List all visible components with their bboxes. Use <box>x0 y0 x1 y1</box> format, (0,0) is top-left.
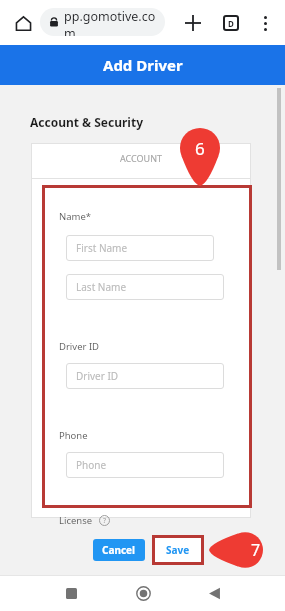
staticText: ACCOUNT <box>120 152 163 164</box>
staticText: pp.gomotive.com <box>64 8 165 36</box>
button[interactable]: Recent apps <box>58 580 84 606</box>
staticText: ? <box>103 516 107 526</box>
button[interactable]: Cancel <box>93 539 145 561</box>
staticText: Phone <box>59 429 88 442</box>
staticText: 7 <box>251 539 261 561</box>
button[interactable]: New tab <box>180 10 206 36</box>
staticText: Driver ID <box>59 340 100 353</box>
staticText: First Name <box>76 241 128 255</box>
staticText: License <box>59 514 93 527</box>
staticText: Driver ID <box>76 369 119 383</box>
button[interactable]: Back <box>201 580 227 606</box>
staticText: Add Driver <box>103 55 183 75</box>
staticText: Name* <box>59 210 92 223</box>
button[interactable]: pp.gomotive.com <box>40 8 165 36</box>
staticText: Cancel <box>102 543 136 557</box>
staticText: Last Name <box>76 280 127 294</box>
button[interactable]: ACCOUNT <box>31 143 251 173</box>
button[interactable]: Home <box>10 10 36 36</box>
staticText: D <box>228 18 234 29</box>
staticText: Account & Security <box>30 114 144 130</box>
button[interactable]: Last Name <box>66 274 224 300</box>
button[interactable]: Home <box>130 580 156 606</box>
button[interactable]: More options <box>252 10 278 36</box>
button[interactable]: Save <box>152 535 204 565</box>
button[interactable]: Tabs <box>218 10 244 36</box>
staticText: 6 <box>195 137 205 160</box>
staticText: Phone <box>76 458 107 472</box>
staticText: Save <box>166 543 190 557</box>
button[interactable]: Driver ID <box>66 363 224 389</box>
button[interactable]: License <box>59 514 110 527</box>
button[interactable]: First Name <box>66 235 214 261</box>
button[interactable]: Phone <box>66 452 224 478</box>
